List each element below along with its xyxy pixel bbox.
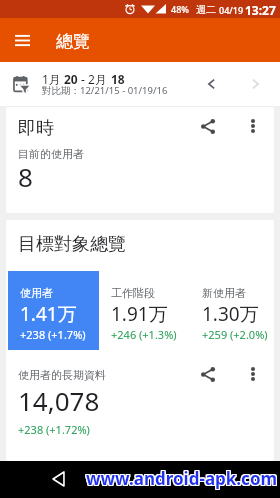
staticText: 即時	[18, 117, 54, 140]
staticText: 目標對象總覽	[18, 233, 126, 256]
button[interactable]: Share	[194, 112, 222, 140]
staticText: +246 (+1.3%)	[111, 327, 177, 342]
button[interactable]: More options	[239, 112, 267, 140]
staticText: www.android-apk.com	[87, 467, 279, 490]
button[interactable]: More options	[239, 360, 267, 388]
button[interactable]: Next period	[238, 67, 272, 101]
staticText: 18	[111, 71, 125, 87]
staticText: 13:27	[245, 2, 276, 18]
staticText: 總覽	[56, 31, 90, 52]
staticText: 週二	[196, 3, 216, 16]
staticText: 20	[64, 71, 78, 87]
button[interactable]: 工作階段	[99, 271, 190, 350]
staticText: 1.41万	[20, 301, 77, 327]
staticText: 使用者	[20, 286, 53, 300]
staticText: www.android-apk.com	[86, 467, 278, 490]
staticText: www.android-apk.com	[85, 467, 277, 490]
staticText: 1.30万	[202, 301, 259, 327]
button[interactable]: 新使用者	[190, 271, 274, 350]
staticText: 1.91万	[111, 301, 168, 327]
staticText: - 2月	[78, 71, 111, 87]
staticText: www.android-apk.com	[87, 468, 279, 491]
staticText: 48%	[171, 3, 189, 15]
staticText: +238 (+1.7%)	[20, 327, 86, 342]
staticText: 對比期：12/21/15 - 01/19/16	[42, 84, 168, 97]
staticText: 1月	[42, 71, 64, 87]
button[interactable]: Share	[194, 360, 222, 388]
staticText: 8	[18, 159, 33, 194]
staticText: 使用者的長期資料	[18, 368, 106, 382]
button[interactable]	[6, 360, 274, 390]
staticText: www.android-apk.com	[85, 468, 277, 491]
staticText: +259 (+2.0%)	[202, 327, 268, 342]
staticText: www.android-apk.com	[85, 466, 277, 489]
button[interactable]: Open navigation menu	[0, 18, 44, 62]
button[interactable]	[6, 107, 274, 147]
staticText: www.android-apk.com	[86, 468, 278, 491]
staticText: www.android-apk.com	[87, 466, 279, 489]
staticText: 新使用者	[202, 286, 246, 300]
button[interactable]: Back	[44, 465, 72, 493]
button[interactable]: 1月	[0, 62, 280, 106]
staticText: 目前的使用者	[18, 147, 84, 161]
staticText: 工作階段	[111, 286, 155, 300]
staticText: 04/19	[219, 4, 244, 16]
button[interactable]: 使用者	[8, 271, 99, 350]
staticText: +238 (+1.72%)	[18, 422, 90, 437]
staticText: www.android-apk.com	[86, 466, 278, 489]
staticText: 14,078	[18, 383, 100, 418]
button[interactable]: Previous period	[194, 67, 228, 101]
